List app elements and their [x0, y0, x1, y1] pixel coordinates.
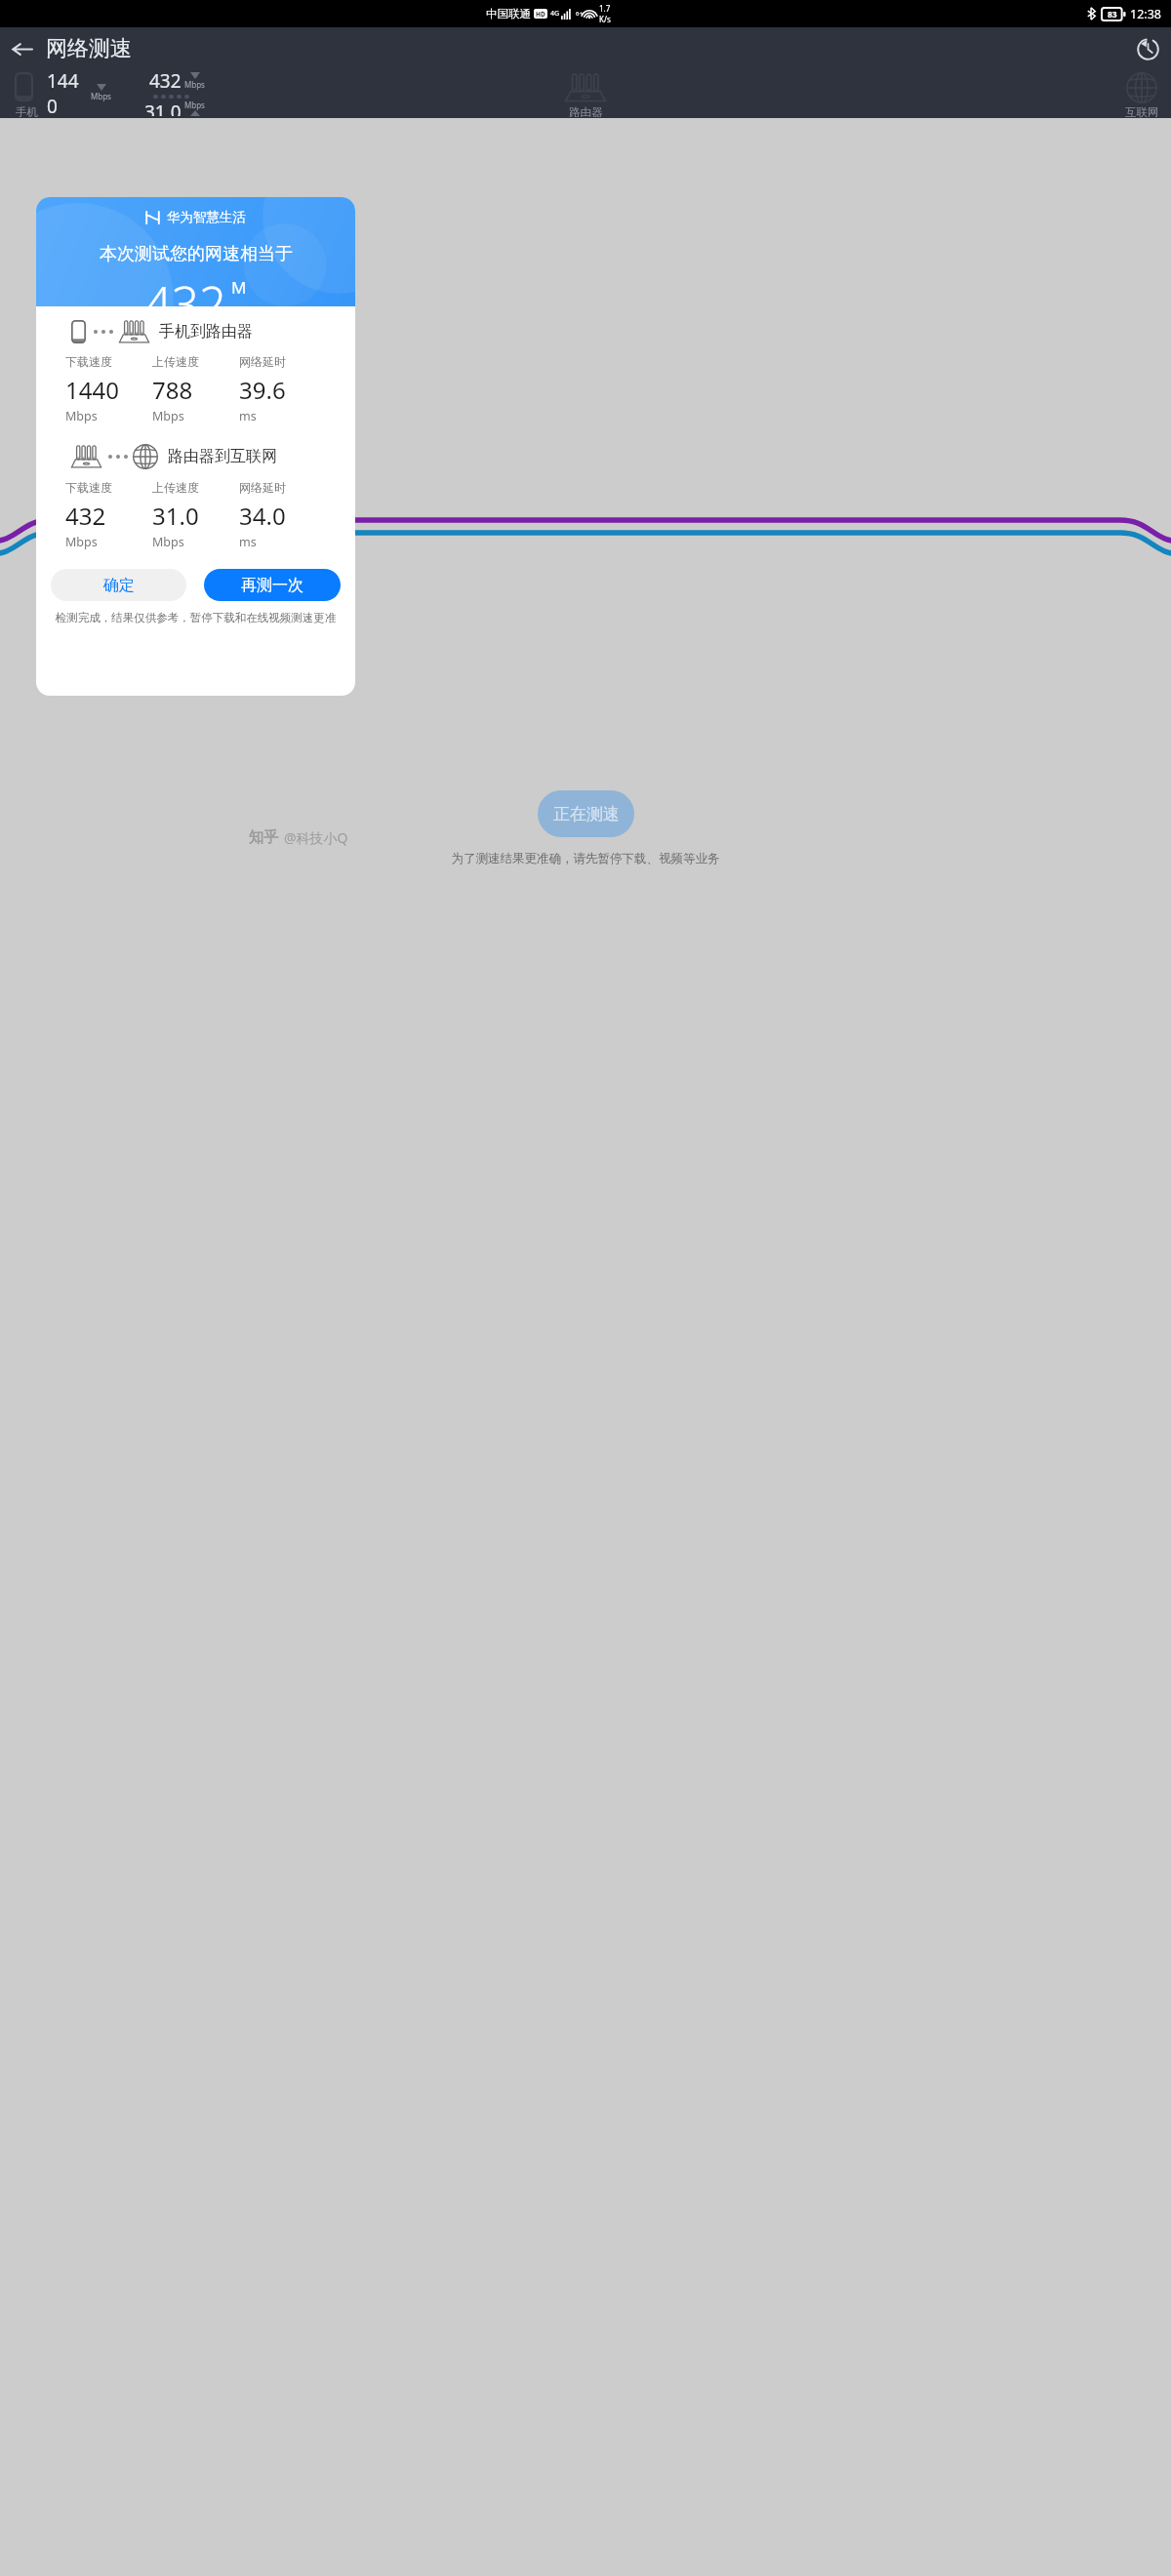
staticText: 本次测试您的网速相当于 [100, 243, 293, 265]
staticText: Mbps [65, 534, 98, 550]
staticText: M [231, 276, 247, 299]
staticText: 31.0 [144, 100, 182, 116]
staticText: 路由器到互联网 [168, 447, 277, 466]
staticText: 12:38 [1130, 6, 1161, 22]
staticText: 为了测速结果更准确，请先暂停下载、视频等业务 [0, 851, 1171, 866]
staticText: Mbps [184, 100, 205, 110]
staticText: 知乎 [249, 828, 278, 847]
staticText: 正在测速 [553, 804, 620, 825]
staticText: Mbps [184, 79, 205, 90]
button[interactable]: 确定 [51, 569, 186, 601]
staticText: 1440 [65, 374, 119, 406]
staticText: 4G [550, 9, 560, 19]
staticText: 再测一次 [241, 576, 303, 595]
staticText: ms [239, 408, 257, 424]
staticText: 手机 [16, 105, 38, 119]
staticText: 432 [149, 68, 182, 94]
button[interactable]: 再测一次 [204, 569, 341, 601]
staticText: 网络测速 [46, 35, 132, 62]
staticText: Mbps [152, 534, 184, 550]
staticText: Mbps [91, 91, 111, 101]
staticText: 432 [144, 271, 226, 306]
staticText: 手机到路由器 [159, 322, 253, 342]
staticText: 互联网 [1125, 105, 1159, 119]
staticText: 34.0 [239, 500, 286, 532]
staticText: Mbps [152, 408, 184, 424]
staticText: 432 [65, 500, 106, 532]
staticText: 下载速度 [65, 354, 112, 369]
staticText: @科技小Q [284, 828, 348, 847]
button[interactable]: History [1124, 27, 1171, 70]
button[interactable]: 正在测速 [538, 790, 634, 837]
staticText: HD [536, 10, 545, 19]
staticText: 6+ [576, 10, 583, 18]
staticText: 网络延时 [239, 480, 286, 495]
staticText: 788 [152, 374, 193, 406]
staticText: 确定 [103, 576, 135, 595]
staticText: Mbps [65, 408, 98, 424]
staticText: 中国联通 [486, 7, 531, 20]
staticText: K/s [599, 14, 611, 24]
staticText: 下载速度 [65, 480, 112, 495]
staticText: ms [239, 534, 257, 550]
staticText: 检测完成，结果仅供参考，暂停下载和在线视频测速更准 [36, 611, 355, 624]
staticText: 路由器 [569, 105, 603, 119]
staticText: 华为智慧生活 [167, 209, 246, 225]
staticText: 上传速度 [152, 480, 199, 495]
staticText: 1.7 [599, 3, 611, 14]
staticText: 1440 [47, 68, 88, 116]
staticText: 39.6 [239, 374, 286, 406]
staticText: 网络延时 [239, 354, 286, 369]
button[interactable]: Back [0, 27, 43, 70]
staticText: 31.0 [152, 500, 199, 532]
staticText: 上传速度 [152, 354, 199, 369]
staticText: 83 [1108, 9, 1117, 20]
